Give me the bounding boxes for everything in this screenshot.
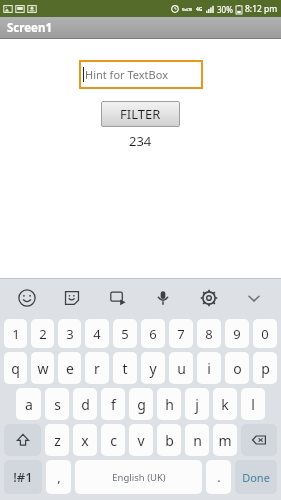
staticText: p xyxy=(261,359,270,378)
staticText: 0 xyxy=(261,325,269,343)
staticText: FILTER xyxy=(120,105,161,123)
button[interactable]: y xyxy=(141,352,165,384)
button[interactable]: t xyxy=(113,352,137,384)
staticText: o xyxy=(233,359,242,378)
button[interactable]: s xyxy=(45,388,69,420)
button[interactable]: . xyxy=(206,460,231,494)
button[interactable]: Shift xyxy=(4,424,41,456)
button[interactable]: e xyxy=(58,352,81,384)
staticText: c xyxy=(110,431,117,450)
button[interactable]: 8 xyxy=(197,319,221,348)
button[interactable]: n xyxy=(185,424,209,456)
button[interactable]: u xyxy=(169,352,193,384)
staticText: k xyxy=(221,395,229,414)
staticText: 9 xyxy=(233,325,241,343)
staticText: 5 xyxy=(121,325,129,343)
staticText: , xyxy=(57,468,61,486)
button[interactable]: Hint for TextBox xyxy=(79,60,203,89)
button[interactable]: Emoji xyxy=(14,285,40,311)
staticText: Done xyxy=(242,470,270,485)
button[interactable]: Done xyxy=(235,460,277,494)
button[interactable]: r xyxy=(85,352,109,384)
staticText: t xyxy=(122,359,128,378)
staticText: VoLTE xyxy=(182,7,193,12)
staticText: 3 xyxy=(66,325,74,343)
button[interactable]: b xyxy=(157,424,181,456)
button[interactable]: Voice input xyxy=(150,285,176,311)
staticText: 8 xyxy=(205,325,213,343)
button[interactable]: c xyxy=(101,424,125,456)
staticText: n xyxy=(193,431,202,450)
button[interactable]: Stickers xyxy=(59,285,85,311)
staticText: 2 xyxy=(39,325,47,343)
button[interactable]: d xyxy=(73,388,97,420)
button[interactable]: o xyxy=(225,352,249,384)
button[interactable]: k xyxy=(213,388,237,420)
staticText: v xyxy=(137,431,145,450)
staticText: 1 xyxy=(12,325,20,343)
staticText: g xyxy=(137,395,146,414)
button[interactable]: q xyxy=(4,352,27,384)
button[interactable]: v xyxy=(129,424,153,456)
staticText: h xyxy=(165,395,174,414)
button[interactable]: Settings xyxy=(196,285,222,311)
staticText: 8:12 pm xyxy=(245,3,278,15)
staticText: 234 xyxy=(129,132,152,150)
staticText: d xyxy=(81,395,90,414)
button[interactable]: m xyxy=(213,424,237,456)
staticText: i xyxy=(207,359,211,378)
staticText: l xyxy=(251,395,255,414)
staticText: x xyxy=(81,431,89,450)
staticText: m xyxy=(218,431,232,450)
button[interactable]: !#1 xyxy=(4,460,42,494)
button[interactable]: 6 xyxy=(141,319,165,348)
staticText: !#1 xyxy=(13,468,33,486)
staticText: . xyxy=(217,468,221,486)
button[interactable]: 4 xyxy=(85,319,109,348)
staticText: y xyxy=(149,359,157,378)
button[interactable]: 5 xyxy=(113,319,137,348)
staticText: 30% xyxy=(217,4,233,15)
button[interactable]: FILTER xyxy=(101,101,180,127)
button[interactable]: 7 xyxy=(169,319,193,348)
staticText: f xyxy=(111,395,116,414)
button[interactable]: , xyxy=(46,460,71,494)
button[interactable]: 1 xyxy=(4,319,27,348)
button[interactable]: English (UK) xyxy=(75,460,202,494)
staticText: 7 xyxy=(177,325,185,343)
staticText: q xyxy=(11,359,20,378)
button[interactable]: Backspace xyxy=(241,424,277,456)
staticText: w xyxy=(37,359,49,378)
staticText: z xyxy=(54,431,61,450)
button[interactable]: z xyxy=(45,424,69,456)
button[interactable]: 2 xyxy=(31,319,54,348)
staticText: b xyxy=(165,431,174,450)
staticText: 6 xyxy=(149,325,157,343)
staticText: u xyxy=(177,359,186,378)
staticText: a xyxy=(25,395,33,414)
button[interactable]: 3 xyxy=(58,319,81,348)
button[interactable]: x xyxy=(73,424,97,456)
staticText: e xyxy=(66,359,74,378)
staticText: r xyxy=(94,359,100,378)
button[interactable]: j xyxy=(185,388,209,420)
button[interactable]: h xyxy=(157,388,181,420)
button[interactable]: p xyxy=(253,352,277,384)
button[interactable]: l xyxy=(241,388,265,420)
staticText: Screen1 xyxy=(7,20,52,36)
button[interactable]: Hide keyboard xyxy=(241,285,267,311)
staticText: English (UK) xyxy=(112,471,166,484)
button[interactable]: a xyxy=(16,388,41,420)
staticText: 4 xyxy=(93,325,101,343)
staticText: j xyxy=(195,395,199,414)
button[interactable]: w xyxy=(31,352,54,384)
button[interactable]: g xyxy=(129,388,153,420)
staticText: 4G xyxy=(196,6,203,13)
button[interactable]: 9 xyxy=(225,319,249,348)
button[interactable]: 0 xyxy=(253,319,277,348)
button[interactable]: i xyxy=(197,352,221,384)
button[interactable]: f xyxy=(101,388,125,420)
staticText: Hint for TextBox xyxy=(85,67,168,82)
button[interactable]: GIF xyxy=(105,285,131,311)
staticText: s xyxy=(54,395,61,414)
